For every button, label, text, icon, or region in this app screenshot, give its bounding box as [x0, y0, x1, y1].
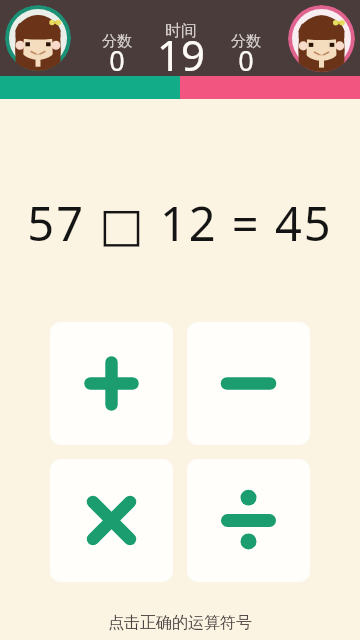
button[interactable]: Player one avatar: [5, 5, 71, 71]
staticText: 时间: [151, 21, 211, 41]
button[interactable]: Divide: [187, 459, 310, 582]
staticText: 0: [216, 42, 276, 79]
staticText: 57 □ 12 = 45: [27, 191, 333, 255]
staticText: 分数: [216, 32, 276, 51]
button[interactable]: Multiply: [50, 459, 173, 582]
button[interactable]: Minus: [187, 322, 310, 445]
staticText: 点击正确的运算符号: [0, 613, 360, 633]
staticText: 19: [151, 26, 211, 83]
staticText: 0: [87, 42, 147, 79]
button[interactable]: Plus: [50, 322, 173, 445]
staticText: 分数: [87, 32, 147, 51]
button[interactable]: Player two avatar: [288, 5, 355, 72]
